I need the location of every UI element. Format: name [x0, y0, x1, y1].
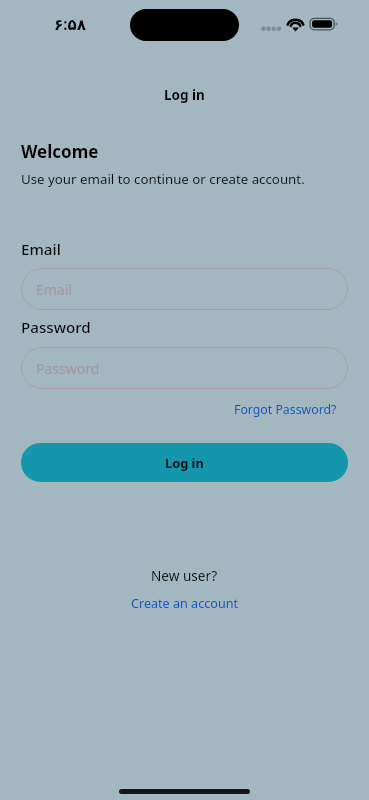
- staticText: ۶:۵۸: [54, 14, 87, 35]
- staticText: Email: [36, 280, 72, 299]
- staticText: Password: [36, 359, 100, 378]
- staticText: Welcome: [21, 140, 99, 163]
- staticText: Log in: [164, 86, 205, 104]
- staticText: New user?: [151, 566, 218, 585]
- button[interactable]: Password: [21, 347, 348, 389]
- staticText: Email: [21, 239, 61, 260]
- staticText: Password: [21, 317, 91, 338]
- button[interactable]: Log in: [21, 443, 348, 482]
- button[interactable]: Create an account: [131, 595, 239, 612]
- button[interactable]: Forgot Password?: [234, 401, 337, 418]
- staticText: Use your email to continue or create acc…: [21, 170, 305, 188]
- staticText: Log in: [165, 454, 204, 471]
- staticText: Forgot Password?: [234, 401, 337, 418]
- button[interactable]: Email: [21, 268, 348, 310]
- staticText: Create an account: [131, 595, 239, 612]
